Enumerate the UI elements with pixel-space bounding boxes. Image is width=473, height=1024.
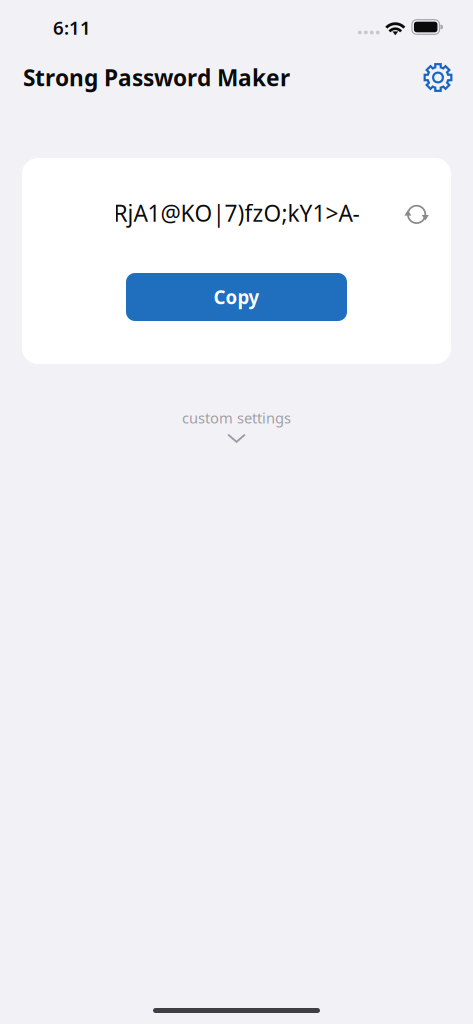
staticText: custom settings: [182, 408, 291, 427]
staticText: RjA1@KO|7)fzO;kY1>A-: [113, 198, 359, 228]
staticText: Copy: [213, 285, 259, 309]
staticText: Strong Password Maker: [23, 62, 290, 92]
button[interactable]: Settings: [417, 56, 459, 98]
button[interactable]: custom settings: [161, 408, 311, 443]
button[interactable]: Generate new password: [399, 193, 435, 233]
button[interactable]: Copy: [126, 273, 347, 321]
staticText: 6:11: [53, 15, 91, 40]
